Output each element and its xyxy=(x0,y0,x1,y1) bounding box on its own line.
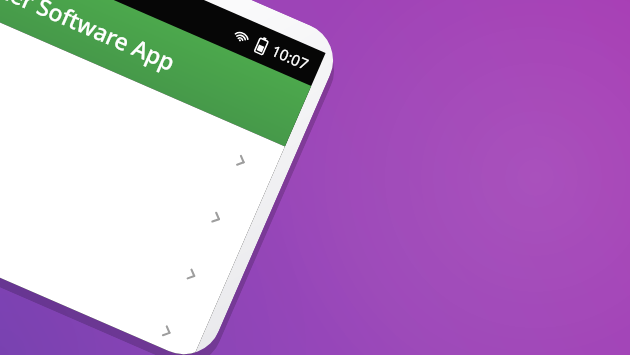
other: Open CUT VIDEO LIST xyxy=(206,208,227,229)
staticText: Video Cutter Software App xyxy=(0,0,180,77)
button[interactable]: CUT VIDEO xyxy=(0,0,285,203)
button[interactable]: CUT VIDEO LIST xyxy=(0,25,260,260)
button[interactable]: MERGE VIDEO LIST xyxy=(0,138,211,355)
other: Open CUT VIDEO xyxy=(231,151,252,172)
other: Open MERGE VIDEO LIST xyxy=(157,321,178,342)
other: Open MERGE VIDEO xyxy=(181,264,202,286)
staticText: 10:07 xyxy=(269,40,312,74)
button[interactable]: MERGE VIDEO xyxy=(0,81,236,317)
